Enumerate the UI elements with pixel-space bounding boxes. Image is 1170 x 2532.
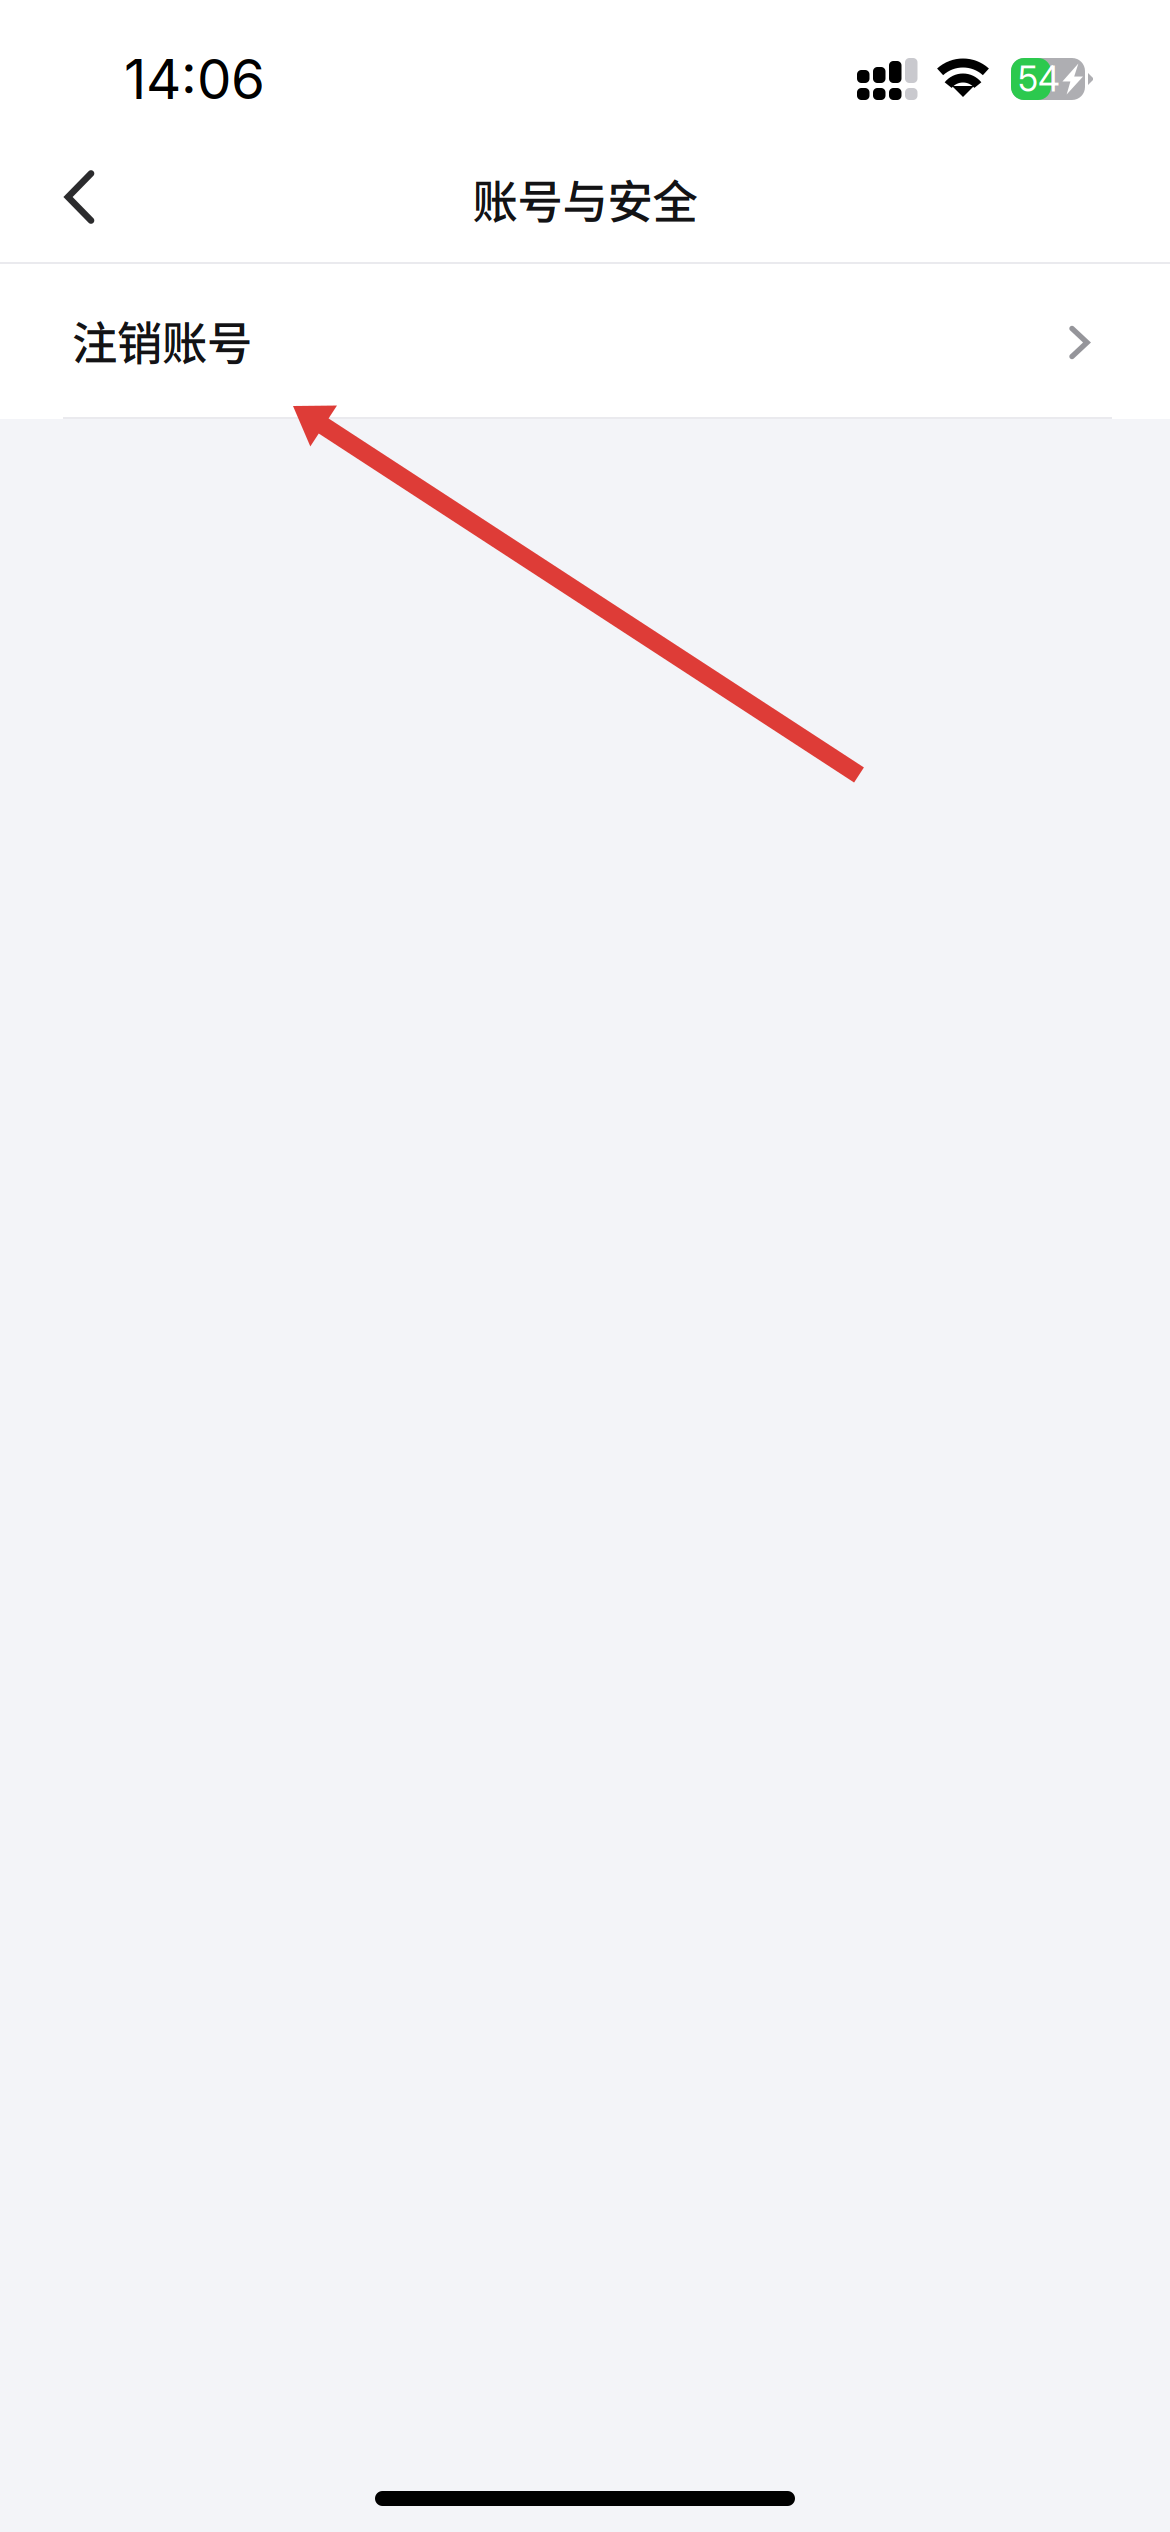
staticText: 14:06 [124,46,265,112]
staticText: 54 [1018,58,1060,100]
staticText: 账号与安全 [472,166,697,232]
staticText: 注销账号 [72,308,252,373]
button[interactable]: 返回 [0,158,159,262]
button[interactable]: 注销账号 [0,264,1170,419]
